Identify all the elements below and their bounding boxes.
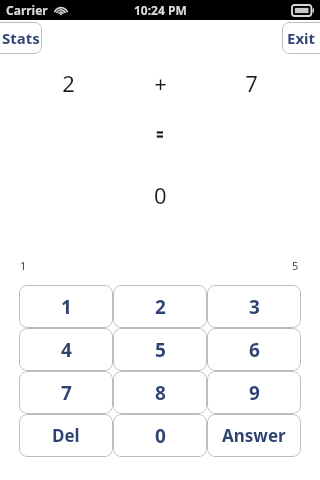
staticText: 0 [154, 180, 167, 210]
staticText: 0 [155, 423, 166, 449]
staticText: 7 [245, 68, 258, 98]
staticText: 2 [155, 294, 166, 320]
button[interactable]: Answer [207, 414, 301, 457]
button[interactable]: 1 [19, 285, 113, 328]
button[interactable]: 9 [207, 371, 301, 414]
staticText: 1 [20, 258, 27, 273]
staticText: 5 [292, 258, 299, 273]
staticText: 7 [61, 380, 72, 406]
button[interactable]: 7 [19, 371, 113, 414]
button[interactable]: 8 [113, 371, 207, 414]
staticText: Carrier [6, 2, 48, 18]
staticText: Stats [2, 28, 40, 48]
staticText: 2 [62, 68, 75, 98]
button[interactable]: 3 [207, 285, 301, 328]
staticText: 8 [155, 380, 166, 406]
staticText: 6 [249, 337, 260, 363]
staticText: 1 [61, 294, 72, 320]
button[interactable]: 0 [113, 414, 207, 457]
button[interactable]: Del [19, 414, 113, 457]
button[interactable]: 2 [113, 285, 207, 328]
staticText: 10:24 PM [134, 2, 187, 18]
button[interactable]: Stats [0, 22, 42, 54]
button[interactable]: 5 [113, 328, 207, 371]
button[interactable]: 6 [207, 328, 301, 371]
staticText: Answer [222, 424, 286, 447]
staticText: 5 [155, 337, 166, 363]
staticText: Del [52, 424, 80, 447]
staticText: + [154, 68, 167, 98]
staticText: 4 [61, 337, 72, 363]
button[interactable]: Exit [282, 22, 320, 54]
button[interactable]: 4 [19, 328, 113, 371]
staticText: 3 [249, 294, 260, 320]
staticText: 9 [249, 380, 260, 406]
staticText: Exit [287, 28, 316, 48]
